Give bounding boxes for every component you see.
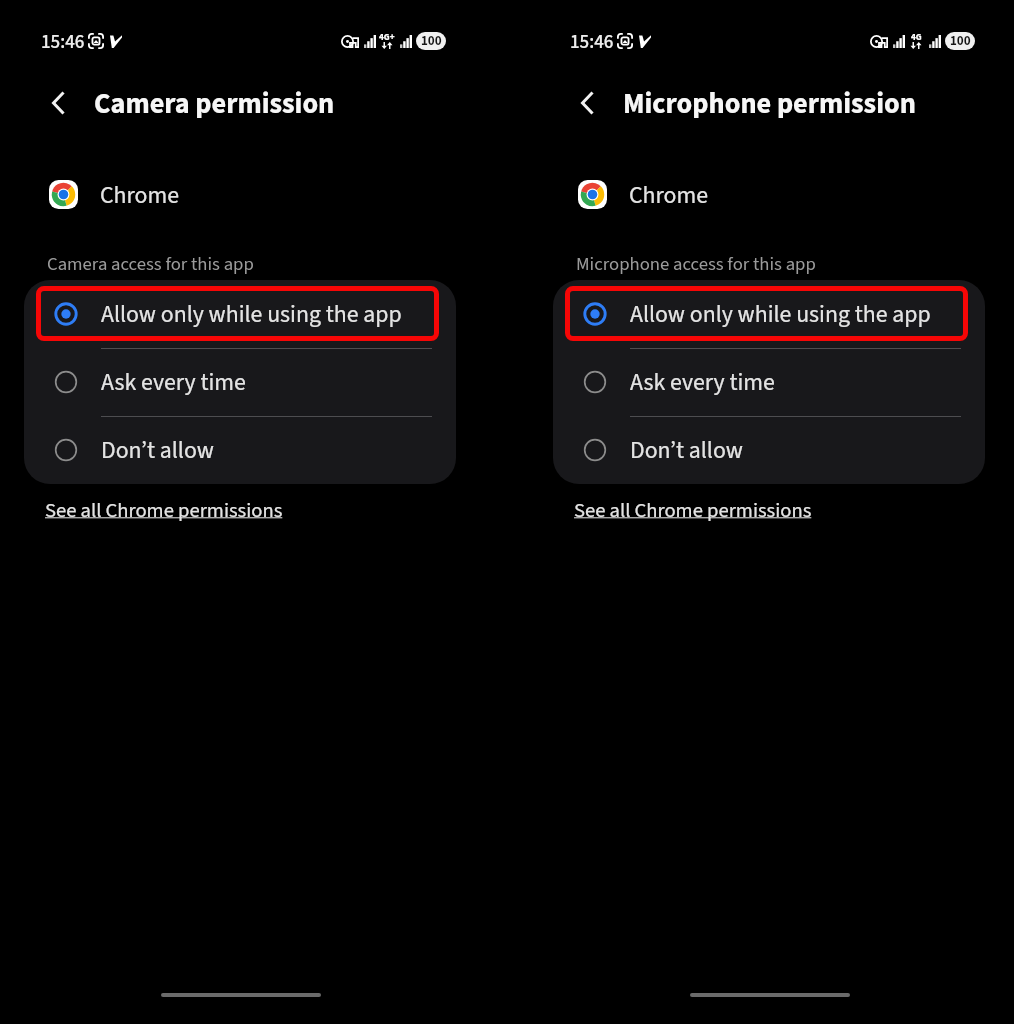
button[interactable]: Allow only while using the app [24,280,456,348]
button[interactable]: Don’t allow [553,416,985,484]
staticText: Microphone access for this app [576,251,816,278]
staticText: Chrome [629,179,708,213]
staticText: 4G+ [379,31,395,44]
staticText: Microphone permission [623,84,916,124]
button[interactable]: Back [30,75,86,131]
staticText: Allow only while using the app [101,298,402,332]
button[interactable]: Ask every time [553,348,985,416]
staticText: 4G [911,31,922,44]
staticText: 100 [421,32,442,50]
staticText: 15:46 [41,29,85,56]
staticText: 15:46 [570,29,614,56]
staticText: Camera access for this app [47,251,254,278]
button[interactable]: See all Chrome permissions [574,496,812,525]
staticText: Don’t allow [101,434,214,468]
staticText: Don’t allow [630,434,743,468]
staticText: 100 [950,32,971,50]
button[interactable]: See all Chrome permissions [45,496,283,525]
button[interactable]: Back [559,75,615,131]
staticText: Camera permission [94,84,335,124]
button[interactable]: Don’t allow [24,416,456,484]
staticText: Chrome [100,179,179,213]
staticText: Allow only while using the app [630,298,931,332]
staticText: Ask every time [101,366,246,400]
staticText: Ask every time [630,366,775,400]
button[interactable]: Allow only while using the app [553,280,985,348]
button[interactable]: Ask every time [24,348,456,416]
